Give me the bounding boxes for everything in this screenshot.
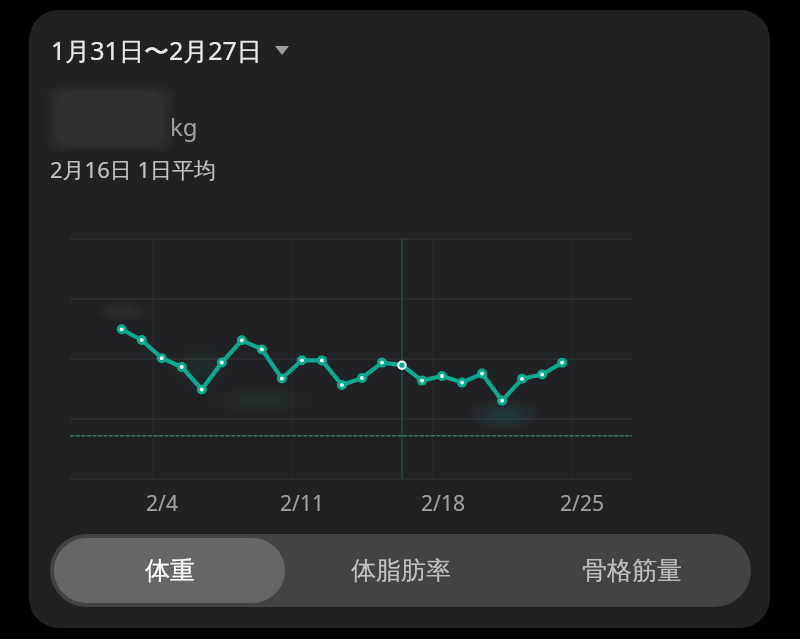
staticText: 2/11 [262,489,342,518]
button[interactable]: 体脂肪率 [285,538,516,603]
button[interactable]: 体重 [54,538,285,603]
staticText: 2月16日 1日平均 [50,154,217,184]
staticText: 2/4 [122,489,202,518]
button[interactable]: 1月31日〜2月27日 [51,33,289,67]
staticText: 体脂肪率 [351,555,451,586]
staticText: 1月31日〜2月27日 [51,33,262,67]
staticText: 2/18 [403,489,483,518]
button[interactable]: 骨格筋量 [516,538,747,603]
staticText: 体重 [145,555,195,586]
staticText: 骨格筋量 [582,555,682,586]
staticText: 2/25 [542,489,622,518]
staticText: kg [170,110,198,143]
